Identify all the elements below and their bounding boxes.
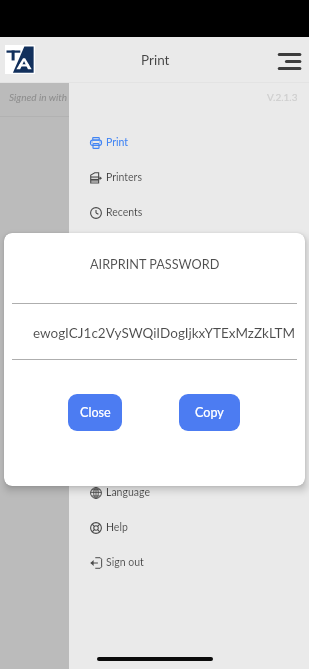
- button[interactable]: Menu: [273, 50, 300, 73]
- staticText: AIRPRINT PASSWORD: [90, 256, 220, 271]
- button[interactable]: Copy: [179, 394, 240, 431]
- staticText: Print: [106, 136, 129, 149]
- staticText: Print: [141, 52, 170, 68]
- button[interactable]: Sign out: [69, 545, 309, 580]
- staticText: Printers: [106, 171, 142, 184]
- staticText: Close: [80, 405, 111, 420]
- button[interactable]: Home: [5, 45, 35, 74]
- staticText: Language: [106, 486, 150, 499]
- staticText: Recents: [106, 206, 143, 219]
- button[interactable]: Close: [68, 394, 122, 431]
- staticText: Sign out: [106, 556, 144, 569]
- button[interactable]: Language: [69, 475, 309, 510]
- button[interactable]: Print: [69, 125, 309, 160]
- staticText: Help: [106, 521, 128, 534]
- button[interactable]: Help: [69, 510, 309, 545]
- button[interactable]: Printers: [69, 160, 309, 195]
- staticText: Copy: [195, 405, 224, 420]
- button[interactable]: Recents: [69, 195, 309, 230]
- staticText: Signed in with: [9, 91, 68, 103]
- staticText: V.2.1.3: [267, 91, 298, 103]
- staticText: ewogICJ1c2VySWQiIDogIjkxYTExMzZkLTM: [33, 325, 296, 341]
